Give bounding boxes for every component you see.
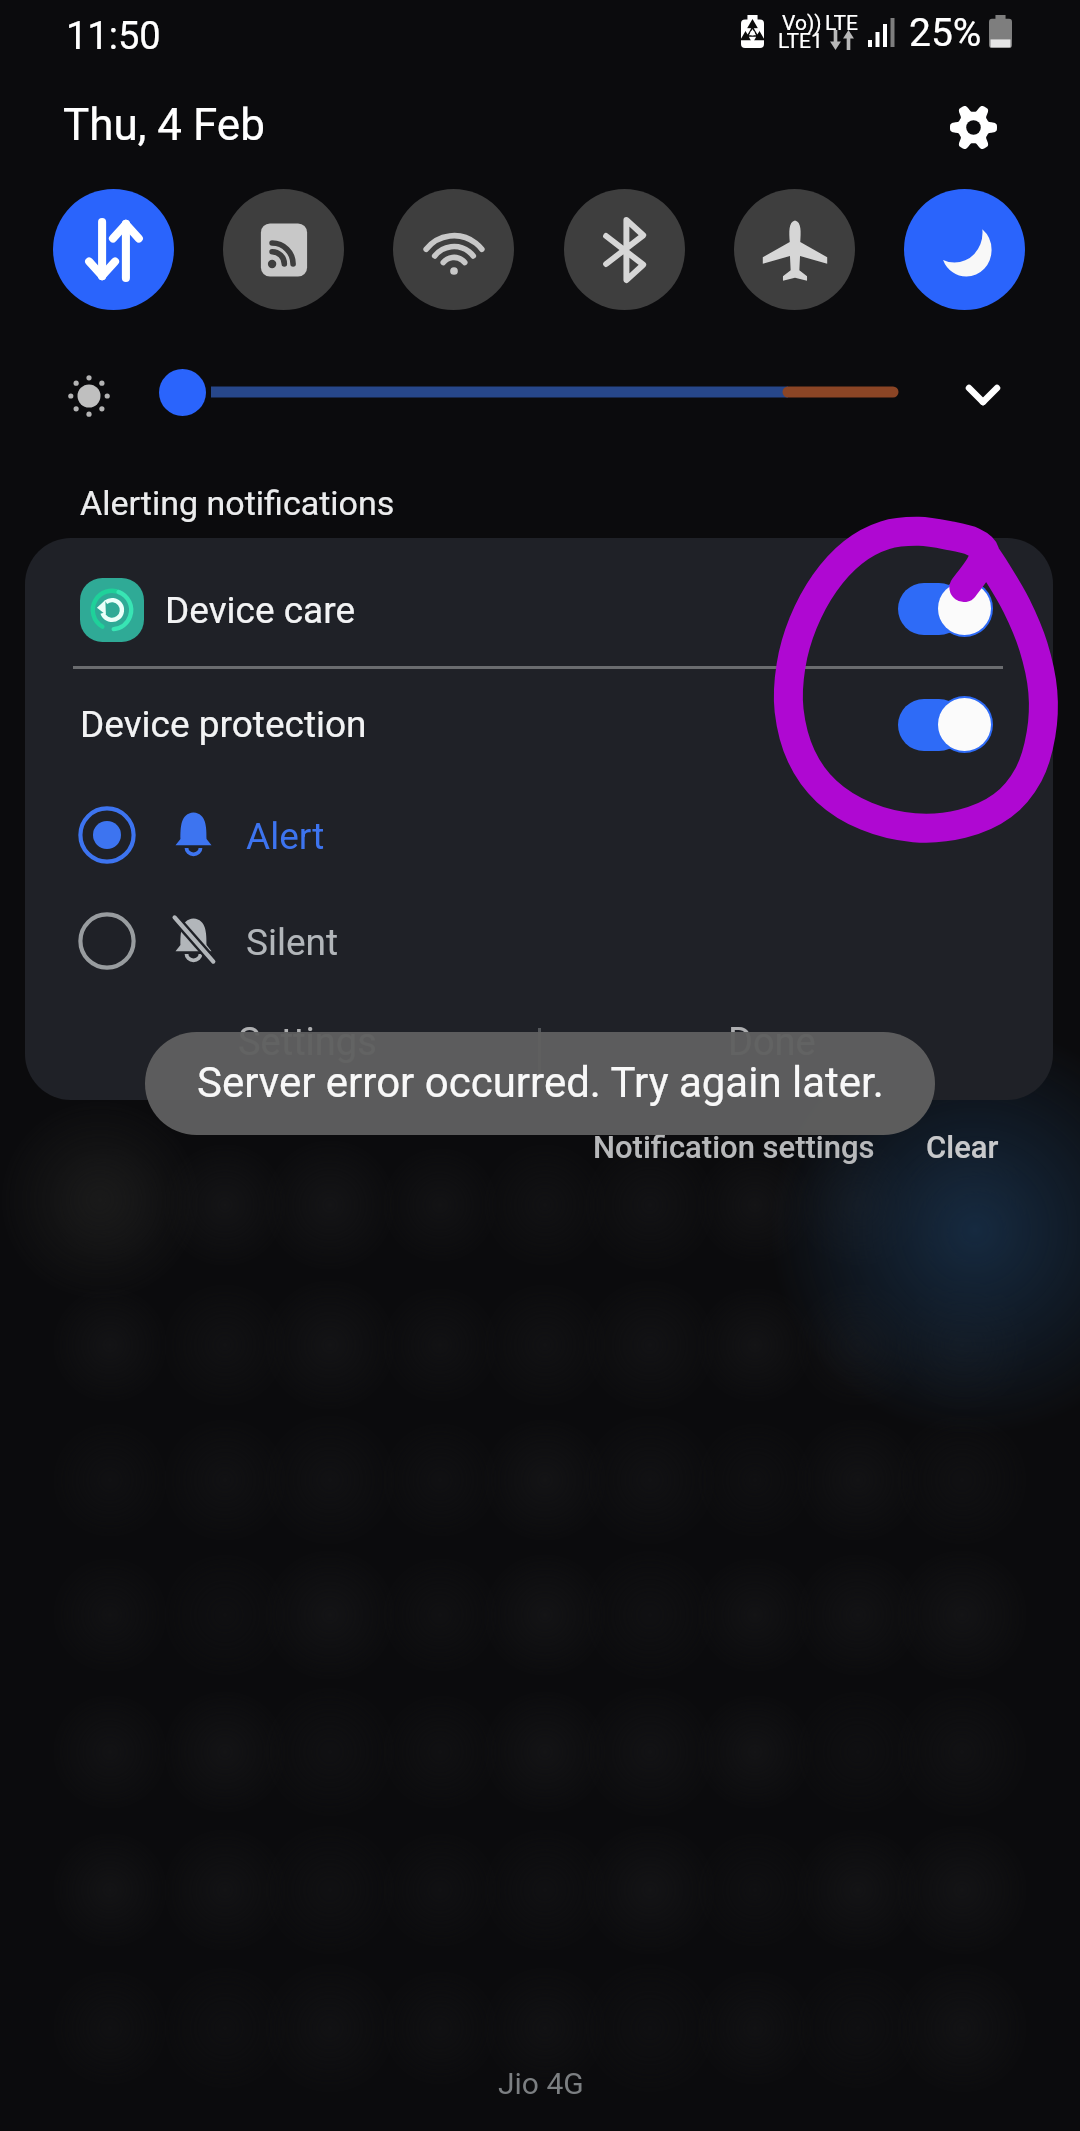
button[interactable]: Done xyxy=(663,1009,881,1075)
staticText: Jio 4G xyxy=(498,2066,584,2101)
staticText: Clear xyxy=(926,1129,999,1165)
button[interactable]: Auto brightness xyxy=(67,374,111,418)
button[interactable]: Mobile data xyxy=(53,189,174,310)
staticText: Vo)) xyxy=(782,11,822,36)
button[interactable]: Toggle xyxy=(898,580,991,638)
button[interactable]: Clear xyxy=(916,1122,1009,1172)
button[interactable]: Settings xyxy=(171,1009,443,1075)
button[interactable]: Bluetooth xyxy=(564,189,685,310)
button[interactable]: Alert xyxy=(75,804,475,866)
button[interactable]: Wi-Fi xyxy=(393,189,514,310)
staticText: Silent xyxy=(246,921,339,964)
button[interactable] xyxy=(25,538,1053,667)
staticText: Settings xyxy=(238,1020,377,1065)
staticText: Device protection xyxy=(80,703,367,746)
staticText: Device care xyxy=(165,589,356,632)
staticText: Done xyxy=(728,1020,816,1065)
staticText: 25% xyxy=(909,10,982,56)
staticText: Thu, 4 Feb xyxy=(63,99,265,151)
button[interactable] xyxy=(25,669,1053,785)
staticText: LTE xyxy=(825,11,858,36)
staticText: Notification settings xyxy=(593,1129,875,1165)
button[interactable]: Settings xyxy=(941,95,1005,159)
staticText: Alert xyxy=(246,815,325,858)
button[interactable]: Expand quick settings xyxy=(949,361,1017,429)
button[interactable]: Notification settings xyxy=(583,1122,885,1172)
button[interactable]: Brightness xyxy=(159,369,206,416)
staticText: 11:50 xyxy=(66,14,161,59)
button[interactable]: Silent xyxy=(75,910,475,972)
button[interactable]: Smart View xyxy=(223,189,344,310)
staticText: Alerting notifications xyxy=(80,483,395,523)
button[interactable]: Flight mode xyxy=(734,189,855,310)
staticText: LTE1 xyxy=(778,29,823,54)
button[interactable]: Dark mode xyxy=(904,189,1025,310)
button[interactable]: Toggle xyxy=(898,696,991,754)
staticText: Server error occurred. Try again later. xyxy=(197,1058,884,1107)
